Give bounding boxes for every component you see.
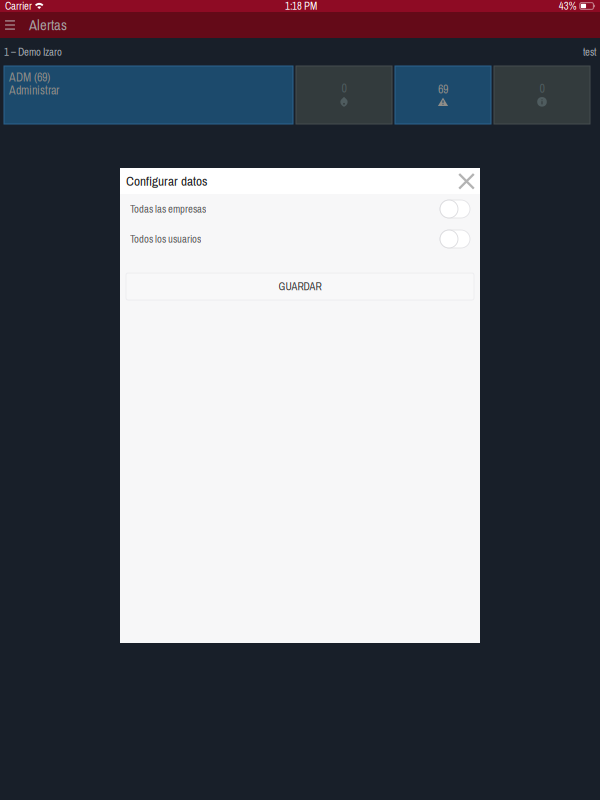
staticText: 1:18 PM [285, 0, 317, 13]
staticText: 0 [539, 80, 544, 97]
button[interactable]: 69 [395, 66, 491, 124]
staticText: 1 – Demo Izaro [4, 45, 62, 59]
button[interactable]: Todos los usuarios [120, 224, 480, 254]
staticText: 69 [438, 81, 448, 97]
button[interactable]: 0 [494, 66, 590, 124]
button[interactable]: Menu [0, 12, 24, 38]
button[interactable]: 0 [296, 66, 392, 124]
button[interactable]: Close [458, 172, 475, 190]
staticText: Administrar [9, 82, 59, 98]
button[interactable]: GUARDAR [126, 273, 474, 300]
button[interactable]: Todas las empresas [120, 194, 480, 224]
staticText: Todas las empresas [130, 202, 206, 216]
button[interactable]: ADM (69) [4, 66, 293, 124]
staticText: test [583, 45, 596, 59]
staticText: Todos los usuarios [130, 232, 201, 246]
staticText: 43% [559, 0, 577, 13]
staticText: Carrier [5, 0, 32, 13]
staticText: Configurar datos [126, 172, 207, 190]
staticText: Alertas [29, 15, 67, 35]
staticText: ADM (69) [9, 69, 50, 85]
staticText: 0 [341, 80, 346, 96]
staticText: GUARDAR [278, 279, 321, 294]
